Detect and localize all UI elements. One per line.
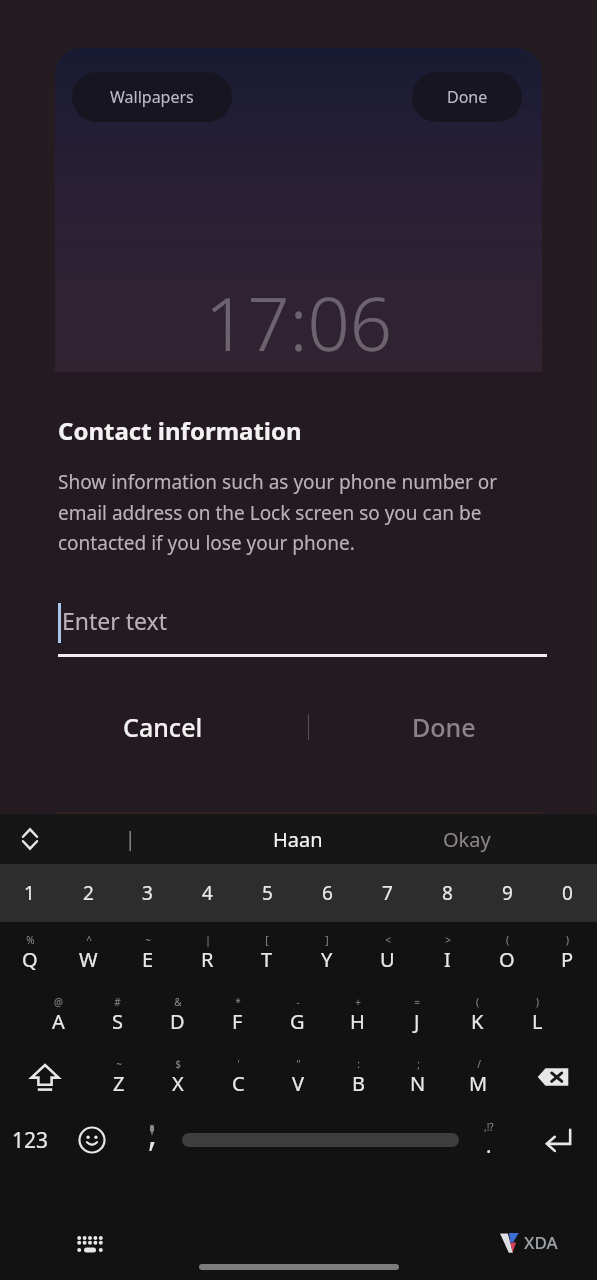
staticText: V: [292, 1070, 304, 1097]
button[interactable]: /: [448, 1046, 508, 1108]
button[interactable]: ~: [118, 922, 177, 984]
button[interactable]: 8: [417, 864, 477, 922]
button[interactable]: Done: [309, 697, 579, 757]
staticText: F: [232, 1008, 243, 1035]
staticText: K: [471, 1008, 484, 1035]
button[interactable]: ': [208, 1046, 268, 1108]
button[interactable]: 123: [0, 1109, 61, 1171]
button[interactable]: +: [327, 984, 387, 1046]
button[interactable]: *: [207, 984, 267, 1046]
button[interactable]: [: [237, 922, 297, 984]
button[interactable]: &: [147, 984, 207, 1046]
button[interactable]: 9: [477, 864, 537, 922]
button[interactable]: 7: [357, 864, 417, 922]
button[interactable]: Space: [182, 1109, 459, 1171]
button[interactable]: ): [537, 922, 597, 984]
button[interactable]: ]: [297, 922, 357, 984]
staticText: 7: [382, 880, 393, 906]
staticText: W: [79, 946, 98, 973]
staticText: (: [476, 995, 479, 1009]
staticText: #: [114, 995, 121, 1009]
staticText: O: [499, 946, 515, 973]
button[interactable]: ): [507, 984, 567, 1046]
button[interactable]: ~: [89, 1046, 148, 1108]
staticText: J: [414, 1008, 420, 1035]
button[interactable]: #: [88, 984, 147, 1046]
button[interactable]: (: [477, 922, 537, 984]
button[interactable]: =: [387, 984, 447, 1046]
staticText: >: [445, 933, 451, 947]
staticText: D: [170, 1008, 185, 1035]
staticText: ": [296, 1057, 301, 1071]
staticText: .: [486, 1132, 492, 1159]
staticText: 8: [442, 880, 453, 906]
staticText: 3: [142, 880, 153, 906]
button[interactable]: Shift: [0, 1046, 89, 1108]
staticText: Z: [113, 1070, 125, 1097]
button[interactable]: Enter text: [58, 599, 547, 657]
button[interactable]: |: [110, 814, 150, 864]
staticText: Show information such as your phone numb…: [58, 469, 549, 555]
staticText: %: [26, 933, 35, 947]
button[interactable]: Enter: [519, 1109, 597, 1171]
button[interactable]: (: [447, 984, 507, 1046]
button[interactable]: Okay: [397, 814, 537, 864]
button[interactable]: Emoji: [61, 1109, 122, 1171]
button[interactable]: Comma or voice input: [122, 1109, 182, 1171]
button[interactable]: <: [357, 922, 417, 984]
staticText: <: [385, 933, 391, 947]
staticText: H: [350, 1008, 365, 1035]
staticText: ~: [145, 933, 151, 947]
button[interactable]: ^: [59, 922, 118, 984]
button[interactable]: Wallpapers: [72, 72, 232, 122]
button[interactable]: Cancel: [18, 697, 308, 757]
staticText: Done: [412, 710, 476, 744]
button[interactable]: 6: [297, 864, 357, 922]
staticText: Wallpapers: [110, 86, 194, 108]
staticText: XDA: [524, 1231, 558, 1254]
staticText: S: [112, 1008, 123, 1035]
staticText: $: [175, 1057, 181, 1071]
staticText: :: [357, 1057, 360, 1071]
staticText: -: [296, 995, 300, 1009]
button[interactable]: ,!?: [459, 1109, 519, 1171]
button[interactable]: :: [328, 1046, 388, 1108]
staticText: Enter text: [62, 605, 168, 636]
button[interactable]: %: [0, 922, 59, 984]
button[interactable]: ;: [388, 1046, 448, 1108]
button[interactable]: Change keyboard: [66, 1220, 114, 1268]
staticText: A: [52, 1008, 65, 1035]
button[interactable]: Done: [412, 72, 522, 122]
button[interactable]: $: [148, 1046, 208, 1108]
button[interactable]: Haan: [228, 814, 368, 864]
button[interactable]: 0: [537, 864, 597, 922]
staticText: 9: [502, 880, 513, 906]
button[interactable]: Backspace: [508, 1046, 597, 1108]
button[interactable]: >: [417, 922, 477, 984]
staticText: L: [532, 1008, 543, 1035]
button[interactable]: 2: [59, 864, 118, 922]
button[interactable]: |: [177, 922, 237, 984]
staticText: +: [355, 995, 361, 1009]
button[interactable]: 3: [118, 864, 177, 922]
button[interactable]: -: [267, 984, 327, 1046]
staticText: 123: [12, 1126, 49, 1155]
staticText: I: [444, 946, 451, 973]
button[interactable]: Expand toolbar: [6, 815, 54, 863]
staticText: Y: [321, 946, 333, 973]
staticText: Cancel: [123, 710, 203, 744]
button[interactable]: 1: [0, 864, 59, 922]
staticText: Q: [22, 946, 38, 973]
button[interactable]: 4: [177, 864, 237, 922]
staticText: @: [54, 995, 63, 1009]
staticText: G: [290, 1008, 305, 1035]
staticText: T: [261, 946, 273, 973]
staticText: 6: [322, 880, 333, 906]
button[interactable]: ": [268, 1046, 328, 1108]
button[interactable]: 5: [237, 864, 297, 922]
staticText: ): [536, 995, 539, 1009]
staticText: |: [205, 933, 211, 947]
staticText: ): [566, 933, 569, 947]
button[interactable]: @: [29, 984, 88, 1046]
staticText: B: [352, 1070, 365, 1097]
